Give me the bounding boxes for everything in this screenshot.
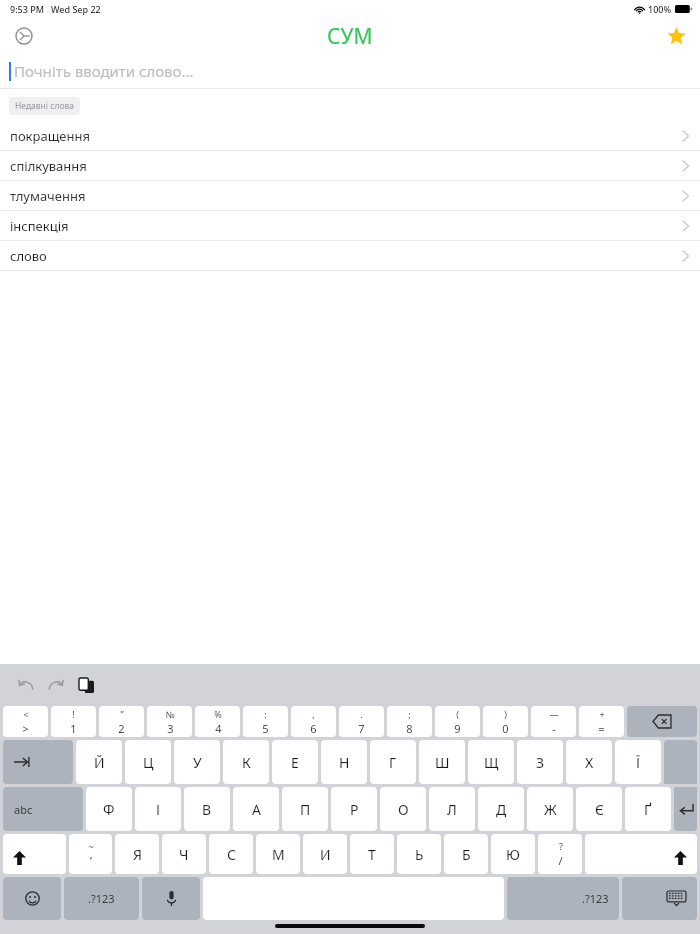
staticText: <: [23, 708, 29, 720]
button[interactable]: Б: [444, 834, 488, 874]
button[interactable]: С: [209, 834, 253, 874]
staticText: Ф: [103, 800, 115, 819]
button[interactable]: ~: [69, 834, 112, 874]
button[interactable]: З: [517, 740, 563, 784]
staticText: Х: [585, 753, 594, 772]
button[interactable]: М: [256, 834, 300, 874]
button[interactable]: Ї: [615, 740, 661, 784]
button[interactable]: Ц: [125, 740, 171, 784]
button[interactable]: тлумачення: [0, 181, 700, 211]
button[interactable]: Л: [429, 787, 475, 831]
button[interactable]: ): [483, 706, 528, 737]
button[interactable]: Hide keyboard: [622, 877, 697, 920]
button[interactable]: .: [339, 706, 384, 737]
staticText: тлумачення: [10, 187, 86, 205]
button[interactable]: abc: [3, 787, 83, 831]
button[interactable]: спілкування: [0, 151, 700, 181]
staticText: О: [398, 800, 409, 819]
staticText: В: [202, 800, 212, 819]
staticText: 8: [406, 721, 413, 736]
button[interactable]: Redo: [42, 671, 70, 699]
button[interactable]: Н: [321, 740, 367, 784]
button[interactable]: О: [380, 787, 426, 831]
button[interactable]: Ш: [419, 740, 465, 784]
button[interactable]: Shift: [585, 834, 697, 874]
button[interactable]: А: [233, 787, 279, 831]
button[interactable]: History: [8, 20, 40, 52]
button[interactable]: К: [223, 740, 269, 784]
button[interactable]: Ж: [527, 787, 573, 831]
button[interactable]: Emoji: [3, 877, 61, 920]
staticText: Л: [447, 800, 457, 819]
other: Tab: [3, 740, 73, 784]
button[interactable]: ?: [538, 834, 582, 874]
staticText: Т: [368, 845, 376, 864]
button[interactable]: Р: [331, 787, 377, 831]
button[interactable]: Favorites: [660, 20, 692, 52]
staticText: інспекція: [10, 217, 69, 235]
button[interactable]: слово: [0, 241, 700, 271]
button[interactable]: Paste: [72, 671, 100, 699]
button[interactable]: ”: [99, 706, 144, 737]
button[interactable]: покращення: [0, 121, 700, 151]
button[interactable]: :: [243, 706, 288, 737]
button[interactable]: Я: [115, 834, 159, 874]
staticText: Ю: [506, 845, 520, 864]
button[interactable]: (: [435, 706, 480, 737]
staticText: Д: [496, 800, 507, 819]
button[interactable]: Undo: [12, 671, 40, 699]
button[interactable]: <: [3, 706, 48, 737]
staticText: ”: [120, 708, 124, 720]
staticText: ’: [90, 853, 92, 868]
button[interactable]: Ю: [491, 834, 535, 874]
staticText: ~: [88, 840, 94, 852]
staticText: 1: [70, 721, 77, 736]
button[interactable]: %: [195, 706, 240, 737]
button[interactable]: .?123: [64, 877, 139, 920]
button[interactable]: И: [303, 834, 347, 874]
button[interactable]: Є: [576, 787, 622, 831]
staticText: 3: [167, 721, 174, 736]
button[interactable]: ,: [291, 706, 336, 737]
button[interactable]: +: [579, 706, 624, 737]
button[interactable]: Tab: [3, 740, 73, 784]
button[interactable]: І: [135, 787, 181, 831]
button[interactable]: Ь: [397, 834, 441, 874]
button[interactable]: В: [184, 787, 230, 831]
button[interactable]: Dictation: [142, 877, 200, 920]
button[interactable]: інспекція: [0, 211, 700, 241]
button[interactable]: ;: [387, 706, 432, 737]
button[interactable]: Д: [478, 787, 524, 831]
button[interactable]: Недавні слова: [9, 97, 80, 115]
button[interactable]: Почніть вводити слово...: [0, 54, 700, 88]
button[interactable]: Т: [350, 834, 394, 874]
button[interactable]: Г: [370, 740, 416, 784]
button[interactable]: Е: [272, 740, 318, 784]
button[interactable]: !: [51, 706, 96, 737]
staticText: 6: [310, 721, 317, 736]
staticText: Ч: [179, 845, 189, 864]
staticText: К: [242, 753, 251, 772]
button[interactable]: Backspace: [627, 706, 697, 737]
button[interactable]: Ґ: [625, 787, 671, 831]
button[interactable]: У: [174, 740, 220, 784]
staticText: 7: [358, 721, 365, 736]
button[interactable]: Й: [76, 740, 122, 784]
button[interactable]: П: [282, 787, 328, 831]
staticText: У: [193, 753, 202, 772]
button[interactable]: Щ: [468, 740, 514, 784]
staticText: С: [227, 845, 236, 864]
staticText: :: [264, 708, 267, 720]
staticText: %: [214, 708, 222, 720]
button[interactable]: Shift: [3, 834, 66, 874]
button[interactable]: .?123: [507, 877, 619, 920]
button[interactable]: Х: [566, 740, 612, 784]
button[interactable]: —: [531, 706, 576, 737]
button[interactable]: Return: [674, 787, 697, 831]
staticText: Б: [462, 845, 471, 864]
button[interactable]: №: [147, 706, 192, 737]
button[interactable]: Ф: [86, 787, 132, 831]
button[interactable]: Ч: [162, 834, 206, 874]
